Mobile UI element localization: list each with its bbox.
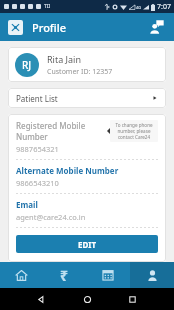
staticText: Rita Jain (47, 53, 81, 65)
staticText: 9887654321 (16, 144, 59, 154)
staticText: Alternate Mobile Number (16, 165, 119, 176)
button[interactable]: Patient List (8, 88, 166, 108)
button[interactable]: Menu (8, 20, 23, 35)
staticText: 4G (136, 5, 142, 10)
staticText: ₹ (60, 266, 69, 285)
staticText: To change phone number, please contact C… (112, 122, 156, 140)
staticText: RJ (22, 58, 32, 72)
button[interactable]: Payments (43, 262, 86, 288)
button[interactable]: RJ (8, 47, 166, 82)
staticText: Customer ID: 12357 (47, 67, 113, 77)
staticText: 9866543210 (16, 178, 59, 188)
staticText: agent@care24.co.in (16, 212, 86, 222)
button[interactable]: EDIT (16, 235, 158, 253)
staticText: Profile (32, 20, 67, 35)
staticText: Patient List (16, 93, 58, 104)
button[interactable]: Home (0, 262, 43, 288)
staticText: EDIT (78, 239, 97, 250)
button[interactable]: Profile (130, 262, 174, 288)
staticText: Registered Mobile Number (16, 120, 105, 142)
staticText: 7:07 (157, 2, 171, 12)
staticText: Email (16, 199, 38, 210)
staticText: TII (44, 3, 51, 10)
button[interactable]: Contact support (146, 17, 166, 37)
button[interactable]: Schedule (86, 262, 130, 288)
